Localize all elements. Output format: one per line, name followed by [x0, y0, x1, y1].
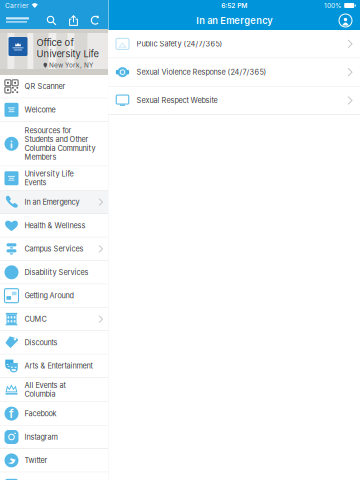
staticText: Discounts [24, 338, 57, 347]
staticText: University Life [36, 48, 98, 60]
staticText: Carrier [5, 1, 29, 10]
button[interactable]: Health & Wellness [0, 214, 109, 237]
button[interactable]: Arts & Entertainment [0, 354, 109, 378]
button[interactable]: Share [62, 11, 84, 29]
staticText: Welcome [24, 105, 55, 114]
staticText: In an Emergency [196, 15, 272, 26]
staticText: Public Safety (24/7/365) [136, 39, 222, 48]
button[interactable]: Getting Around [0, 284, 109, 308]
staticText: 6:52 PM [221, 1, 247, 10]
staticText: Instagram [24, 433, 57, 441]
staticText: Office of [36, 37, 73, 48]
staticText: New York, NY [49, 61, 93, 69]
button[interactable]: Resources for Students and Other Columbi… [0, 122, 109, 166]
button[interactable]: f [0, 402, 109, 426]
button[interactable]: YouTube [0, 472, 109, 480]
button[interactable]: Welcome [0, 98, 109, 122]
staticText: CUMC [24, 315, 46, 324]
button[interactable]: Refresh [84, 11, 106, 29]
button[interactable]: Search [40, 11, 62, 29]
button[interactable]: University Life Events [0, 166, 109, 191]
button[interactable]: Campus Services [0, 237, 109, 261]
button[interactable]: CUMC [0, 308, 109, 331]
button[interactable]: Instagram [0, 426, 109, 449]
button[interactable]: In an Emergency [0, 191, 109, 214]
staticText: In an Emergency [24, 198, 79, 207]
staticText: Sexual Violence Response (24/7/365) [136, 68, 266, 77]
staticText: Sexual Respect Website [136, 96, 217, 105]
button[interactable]: Public Safety (24/7/365) [108, 30, 360, 58]
staticText: Resources for Students and Other Columbi… [24, 126, 95, 162]
staticText: Facebook [24, 409, 56, 418]
staticText: Campus Services [24, 244, 83, 253]
staticText: 100% [324, 1, 342, 10]
button[interactable]: Sexual Violence Response (24/7/365) [108, 58, 360, 87]
staticText: Twitter [24, 456, 47, 465]
staticText: QR Scanner [24, 82, 65, 91]
button[interactable]: All Events at Columbia [0, 378, 109, 402]
staticText: Arts & Entertainment [24, 361, 92, 370]
staticText: Disability Services [24, 268, 88, 277]
button[interactable]: Sexual Respect Website [108, 87, 360, 115]
staticText: All Events at Columbia [24, 381, 65, 399]
staticText: University Life Events [24, 169, 73, 187]
button[interactable]: Account [331, 11, 360, 30]
button[interactable]: Twitter [0, 449, 109, 472]
staticText: Getting Around [24, 291, 73, 300]
button[interactable]: Discounts [0, 331, 109, 354]
staticText: Health & Wellness [24, 221, 85, 230]
button[interactable]: QR Scanner [0, 75, 109, 98]
button[interactable]: Disability Services [0, 261, 109, 284]
staticText: f [9, 406, 14, 421]
